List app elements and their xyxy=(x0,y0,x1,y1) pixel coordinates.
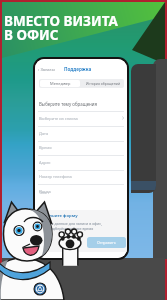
staticText: История обращений xyxy=(86,81,120,86)
staticText: Укажите данные для записи в офис, и мы п… xyxy=(39,221,102,231)
staticText: Почта xyxy=(39,189,51,194)
staticText: Дата xyxy=(39,131,49,136)
button[interactable]: История обращений xyxy=(81,79,124,88)
staticText: Заполните форму xyxy=(39,213,78,219)
staticText: Адрес xyxy=(39,160,51,165)
staticText: Время xyxy=(39,145,52,150)
staticText: Поддержка xyxy=(64,66,92,72)
staticText: Выберите из списка xyxy=(39,116,78,121)
button[interactable]: Менеджер xyxy=(40,80,80,87)
staticText: Отправить xyxy=(97,240,116,245)
staticText: ‹ Заказы xyxy=(38,67,55,73)
staticText: ВМЕСТО ВИЗИТА В ОФИС xyxy=(4,12,118,44)
staticText: Менеджер xyxy=(50,81,71,86)
button[interactable]: Отправить xyxy=(87,237,126,248)
staticText: Выберите тему обращения xyxy=(39,101,98,107)
staticText: Номер телефона xyxy=(39,174,72,179)
staticText: Текст xyxy=(39,190,50,195)
